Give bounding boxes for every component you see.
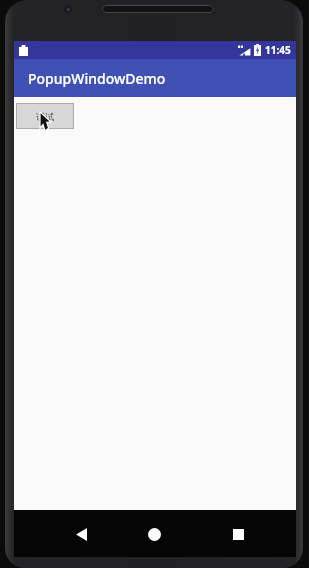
staticText: PopupWindowDemo [28, 69, 166, 88]
button[interactable]: 试试 [16, 103, 74, 129]
button[interactable]: Back [64, 517, 98, 551]
staticText: 试试 [36, 111, 54, 122]
staticText: 11:45 [265, 43, 291, 57]
button[interactable]: Home [137, 517, 171, 551]
button[interactable]: Recent apps [221, 517, 255, 551]
